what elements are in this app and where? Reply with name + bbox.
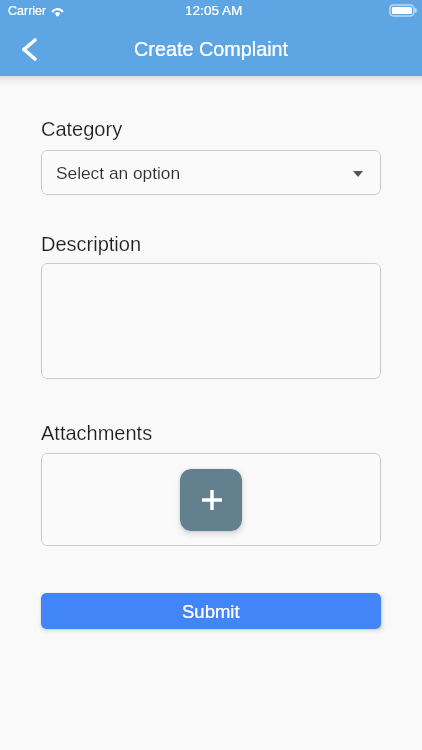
staticText: Description [41, 233, 142, 255]
button[interactable]: Add attachment [180, 469, 242, 531]
staticText: Create Complaint [134, 38, 289, 60]
button[interactable]: Back [9, 29, 49, 69]
button[interactable]: Submit [41, 593, 381, 629]
staticText: Submit [182, 601, 240, 622]
staticText: 12:05 AM [185, 3, 243, 18]
button[interactable] [41, 263, 381, 379]
staticText: Carrier [8, 4, 47, 18]
staticText: Select an option [56, 163, 181, 182]
staticText: Attachments [41, 422, 153, 444]
button[interactable]: Select an option [41, 150, 381, 195]
staticText: Category [41, 118, 123, 140]
